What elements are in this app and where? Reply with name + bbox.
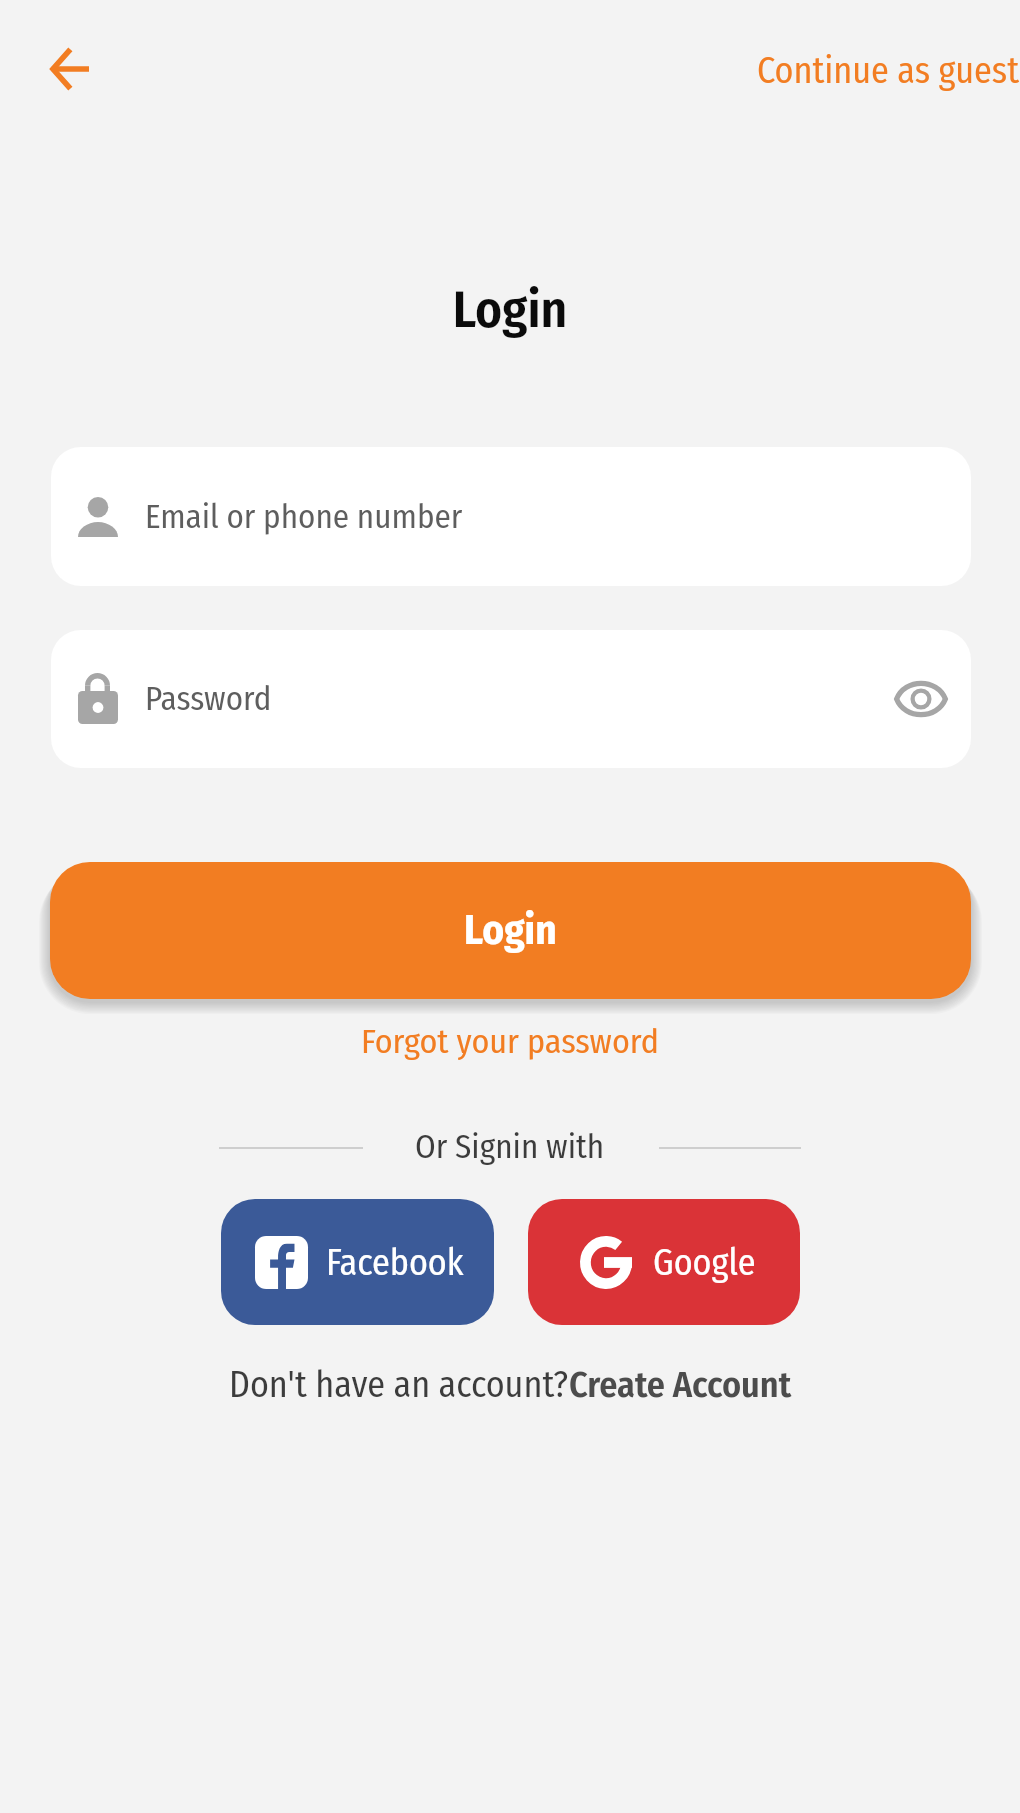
staticText: Google <box>653 1241 756 1284</box>
button[interactable]: Email or phone number <box>51 447 971 586</box>
staticText: Password <box>145 679 272 719</box>
button[interactable]: Continue as guest <box>757 49 1019 92</box>
button[interactable]: Forgot your password <box>349 1013 671 1070</box>
staticText: Or Signin with <box>415 1127 605 1167</box>
staticText: Facebook <box>326 1241 464 1284</box>
staticText: Don't have an account? <box>229 1363 569 1406</box>
button[interactable]: Google <box>528 1199 800 1325</box>
button[interactable]: Create Account <box>569 1363 792 1406</box>
button[interactable]: Show password <box>871 649 971 749</box>
staticText: Login <box>464 906 557 955</box>
button[interactable]: Login <box>50 862 971 999</box>
staticText: Continue as guest <box>757 49 1019 92</box>
staticText: Email or phone number <box>145 497 463 537</box>
button[interactable]: Facebook <box>221 1199 494 1325</box>
staticText: Login <box>0 279 1020 340</box>
staticText: Create Account <box>569 1363 792 1406</box>
button[interactable]: Password <box>51 630 971 768</box>
staticText: Forgot your password <box>361 1021 659 1062</box>
button[interactable]: Back <box>19 19 119 119</box>
